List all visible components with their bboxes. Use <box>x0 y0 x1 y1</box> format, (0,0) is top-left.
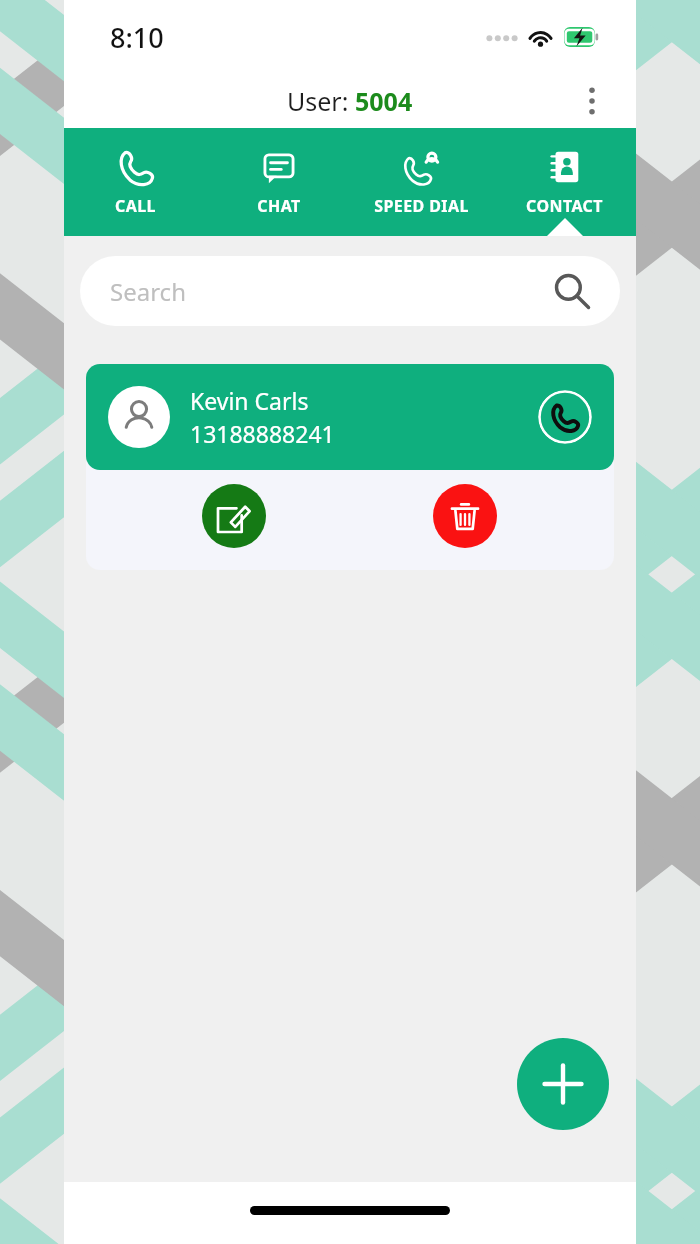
button[interactable]: Delete contact <box>433 484 497 548</box>
staticText: CONTACT <box>526 195 603 217</box>
staticText: CHAT <box>257 195 301 217</box>
button[interactable]: Call Kevin Carls <box>538 390 592 444</box>
staticText: Search <box>110 275 186 308</box>
button[interactable]: Add contact <box>517 1038 609 1130</box>
button[interactable]: Kevin Carls <box>86 364 614 470</box>
staticText: Kevin Carls <box>190 385 309 416</box>
staticText: 5004 <box>355 84 413 118</box>
button[interactable]: Search <box>80 256 620 326</box>
button[interactable]: Edit contact <box>202 484 266 548</box>
staticText: 13188888241 <box>190 418 335 449</box>
button[interactable]: CHAT <box>207 128 350 236</box>
button[interactable]: More options <box>570 79 614 123</box>
button[interactable]: CALL <box>64 128 207 236</box>
button[interactable]: SPEED DIAL <box>350 128 493 236</box>
staticText: SPEED DIAL <box>374 195 469 217</box>
staticText: User: <box>287 84 355 118</box>
staticText: CALL <box>115 195 156 217</box>
staticText: 8:10 <box>110 19 164 56</box>
button[interactable]: CONTACT <box>493 128 636 236</box>
